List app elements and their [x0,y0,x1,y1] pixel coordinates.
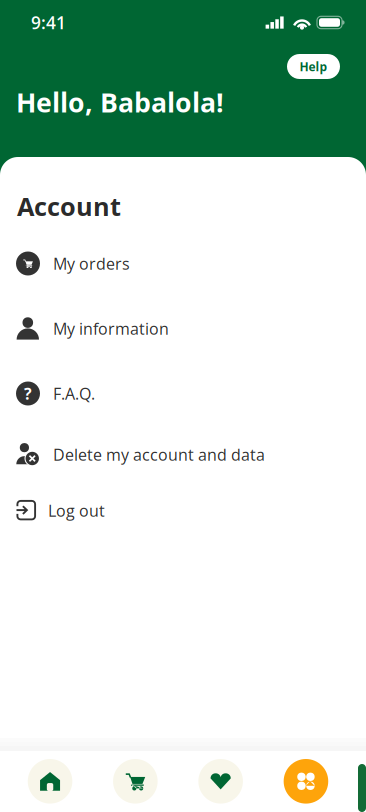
button[interactable]: ? [0,371,366,415]
button[interactable]: More [263,759,349,804]
button[interactable]: My orders [0,241,366,285]
staticText: My orders [53,253,130,274]
staticText: ? [24,383,32,404]
staticText: Help [299,58,327,75]
button[interactable]: Favourites [178,759,263,804]
button[interactable]: Home [7,759,93,804]
button[interactable]: Log out [0,488,366,532]
staticText: F.A.Q. [53,383,95,404]
staticText: Log out [48,500,105,521]
button[interactable]: Cart [93,759,178,804]
staticText: 9:41 [31,11,66,34]
staticText: Hello, Babalola! [16,84,224,120]
staticText: Account [17,189,121,223]
button[interactable]: My information [0,306,366,350]
button[interactable]: Delete my account and data [0,432,366,476]
staticText: Delete my account and data [53,444,265,465]
staticText: My information [53,318,169,339]
button[interactable]: Help [287,54,340,79]
